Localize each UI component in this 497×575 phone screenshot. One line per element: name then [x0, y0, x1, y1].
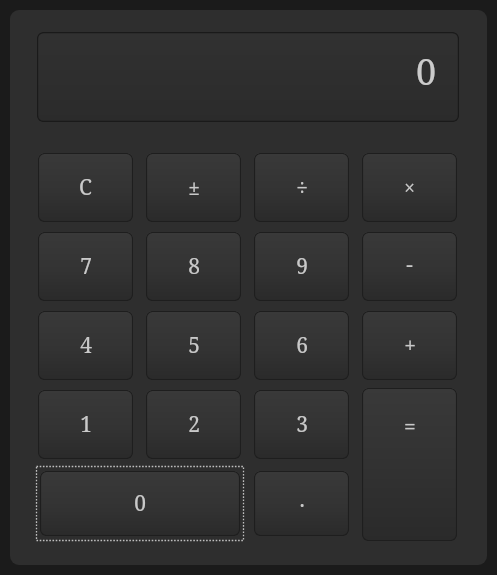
staticText: 0	[416, 47, 437, 96]
staticText: 7	[80, 252, 92, 281]
button[interactable]: Decimal point	[254, 471, 349, 536]
staticText: C	[79, 173, 92, 202]
staticText: -	[406, 250, 413, 279]
staticText: 1	[80, 410, 92, 439]
button[interactable]: 4	[38, 311, 133, 380]
staticText: 5	[188, 331, 200, 360]
button[interactable]: 2	[146, 390, 241, 459]
button[interactable]: 3	[254, 390, 349, 459]
button[interactable]: Subtract	[362, 232, 457, 301]
button[interactable]: 9	[254, 232, 349, 301]
staticText: .	[299, 485, 305, 514]
staticText: +	[404, 331, 416, 360]
staticText: =	[404, 412, 416, 441]
button[interactable]: Toggle sign	[146, 153, 241, 222]
button[interactable]: C	[38, 153, 133, 222]
staticText: 9	[296, 252, 308, 281]
staticText: 2	[188, 410, 200, 439]
staticText: 6	[296, 331, 308, 360]
button[interactable]: Equals	[362, 388, 457, 541]
staticText: 0	[134, 489, 146, 518]
button[interactable]: Add	[362, 311, 457, 380]
button[interactable]: 0	[37, 32, 459, 122]
button[interactable]: Multiply	[362, 153, 457, 222]
button[interactable]: 8	[146, 232, 241, 301]
button[interactable]: Divide	[254, 153, 349, 222]
button[interactable]: 5	[146, 311, 241, 380]
button[interactable]: 7	[38, 232, 133, 301]
button[interactable]: 0	[40, 471, 240, 536]
button[interactable]: 1	[38, 390, 133, 459]
staticText: ÷	[296, 173, 308, 202]
staticText: 3	[296, 410, 308, 439]
staticText: 8	[188, 252, 200, 281]
staticText: ×	[404, 175, 415, 201]
staticText: ±	[188, 173, 200, 202]
staticText: 4	[80, 331, 92, 360]
button[interactable]: 6	[254, 311, 349, 380]
